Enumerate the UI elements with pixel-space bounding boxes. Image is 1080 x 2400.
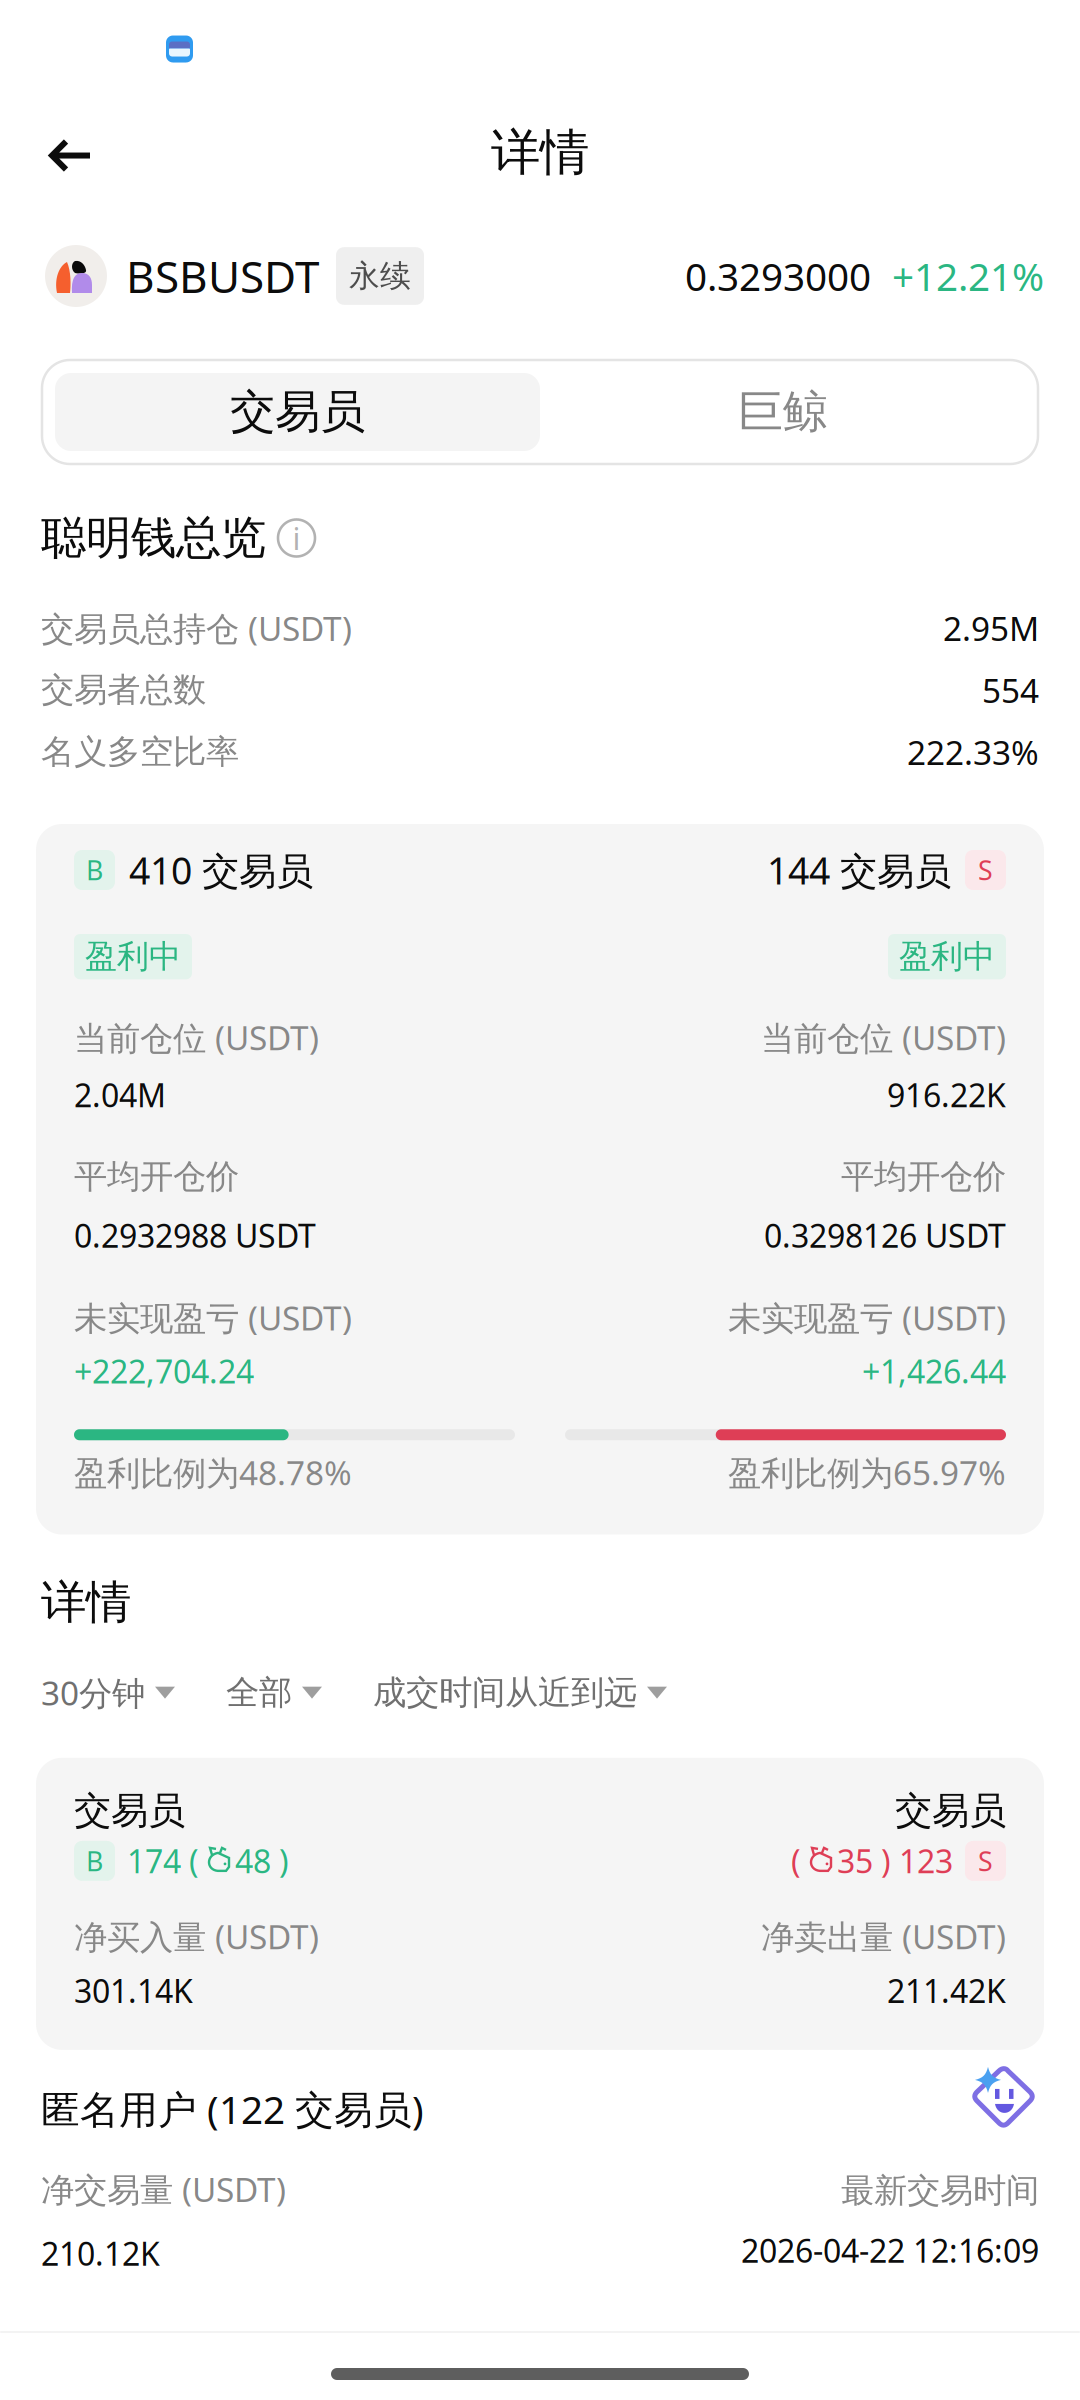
staticText: 0.3293000 [685,250,871,302]
staticText: S [978,852,993,888]
staticText: 交易员总持仓 (USDT) [41,606,352,650]
staticText: 匿名用户 (122 交易员) [41,2083,424,2134]
staticText: 详情 [41,1575,131,1630]
staticText: 未实现盈亏 (USDT) [728,1295,1006,1340]
staticText: 2.95M [943,606,1039,650]
button[interactable]: 全部 [226,1664,322,1721]
staticText: 916.22K [887,1074,1006,1116]
staticText: 当前仓位 (USDT) [761,1015,1006,1060]
staticText: 永续 [349,257,411,295]
button[interactable]: 交易员 [55,373,540,451]
staticText: 名义多空比率 [41,731,239,772]
staticText: 交易者总数 [41,669,206,710]
staticText: 301.14K [74,1969,193,2012]
staticText: 平均开仓价 [841,1156,1006,1197]
staticText: 174 ( [127,1840,199,1882]
staticText: 554 [982,668,1039,712]
button[interactable]: Back [0,104,179,200]
staticText: B [86,852,103,888]
staticText: +222,704.24 [74,1350,254,1392]
staticText: i [292,518,300,558]
staticText: 净买入量 (USDT) [74,1914,319,1958]
staticText: B [86,1843,103,1879]
staticText: 当前仓位 (USDT) [74,1015,319,1060]
staticText: 0.2932988 USDT [74,1214,316,1256]
staticText: 0.3298126 USDT [764,1214,1006,1256]
staticText: BSBUSDT [126,247,319,305]
staticText: 交易员 [895,1788,1006,1834]
staticText: 30分钟 [41,1670,145,1715]
staticText: 平均开仓价 [74,1156,239,1197]
staticText: +12.21% [892,250,1044,302]
staticText: 410 交易员 [129,845,313,895]
staticText: 聪明钱总览 [41,510,266,566]
staticText: 详情 [491,122,589,183]
staticText: 成交时间从近到远 [373,1672,637,1713]
staticText: 48 ) [235,1840,289,1882]
staticText: 盈利中 [899,937,995,976]
staticText: 盈利中 [85,937,181,976]
staticText: 净交易量 (USDT) [41,2167,286,2211]
staticText: 交易员 [74,1788,185,1834]
button[interactable]: 成交时间从近到远 [373,1664,667,1721]
staticText: 211.42K [887,1969,1006,2012]
button[interactable]: 30分钟 [41,1662,175,1723]
staticText: 最新交易时间 [841,2170,1039,2211]
staticText: 144 交易员 [767,845,951,895]
staticText: +1,426.44 [862,1350,1006,1392]
staticText: 交易员 [230,384,365,440]
staticText: 盈利比例为48.78% [74,1450,352,1495]
staticText: S [978,1843,993,1879]
staticText: 2.04M [74,1074,166,1116]
staticText: 35 ) 123 [837,1840,953,1882]
staticText: 盈利比例为65.97% [728,1450,1006,1495]
staticText: 净卖出量 (USDT) [761,1914,1006,1958]
staticText: 2026-04-22 12:16:09 [741,2229,1039,2271]
staticText: 222.33% [907,730,1039,774]
staticText: 全部 [226,1672,292,1713]
staticText: 巨鲸 [737,384,827,440]
staticText: ( [791,1840,801,1882]
staticText: 210.12K [41,2232,160,2275]
staticText: 未实现盈亏 (USDT) [74,1295,352,1340]
button[interactable]: 巨鲸 [540,373,1025,451]
